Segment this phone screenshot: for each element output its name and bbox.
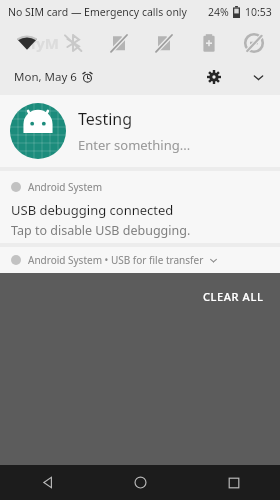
button[interactable]: Battery saver	[186, 24, 231, 62]
button[interactable]: CLEAR ALL	[197, 285, 270, 308]
staticText: Enter something...	[78, 136, 191, 154]
staticText: Mon, May 6	[14, 69, 77, 85]
button[interactable]: Android System • USB for file transfer	[0, 247, 280, 273]
button[interactable]: Recent apps	[187, 465, 280, 500]
button[interactable]: Back	[0, 465, 94, 500]
button[interactable]: Bluetooth	[50, 24, 96, 62]
button[interactable]: Do not disturb	[231, 24, 276, 62]
staticText: Android System • USB for file transfer	[28, 253, 204, 267]
button[interactable]: SIM 2 off	[141, 24, 186, 62]
button[interactable]: Testing	[0, 95, 280, 167]
staticText: Android System	[28, 180, 103, 194]
staticText: ifyM	[26, 33, 60, 53]
button[interactable]: Expand	[244, 63, 272, 91]
staticText: 10:53	[245, 5, 272, 19]
button[interactable]: Home	[94, 465, 187, 500]
staticText: Testing	[78, 108, 133, 130]
staticText: CLEAR ALL	[203, 289, 264, 304]
button[interactable]: Android System	[0, 171, 280, 243]
button[interactable]: Settings	[200, 63, 228, 91]
button[interactable]: SIM 1 off	[96, 24, 141, 62]
button[interactable]: Wi-Fi	[4, 24, 50, 62]
staticText: Tap to disable USB debugging.	[11, 222, 191, 239]
staticText: No SIM card — Emergency calls only	[8, 5, 187, 19]
staticText: 24%	[208, 5, 229, 19]
staticText: USB debugging connected	[11, 201, 174, 219]
